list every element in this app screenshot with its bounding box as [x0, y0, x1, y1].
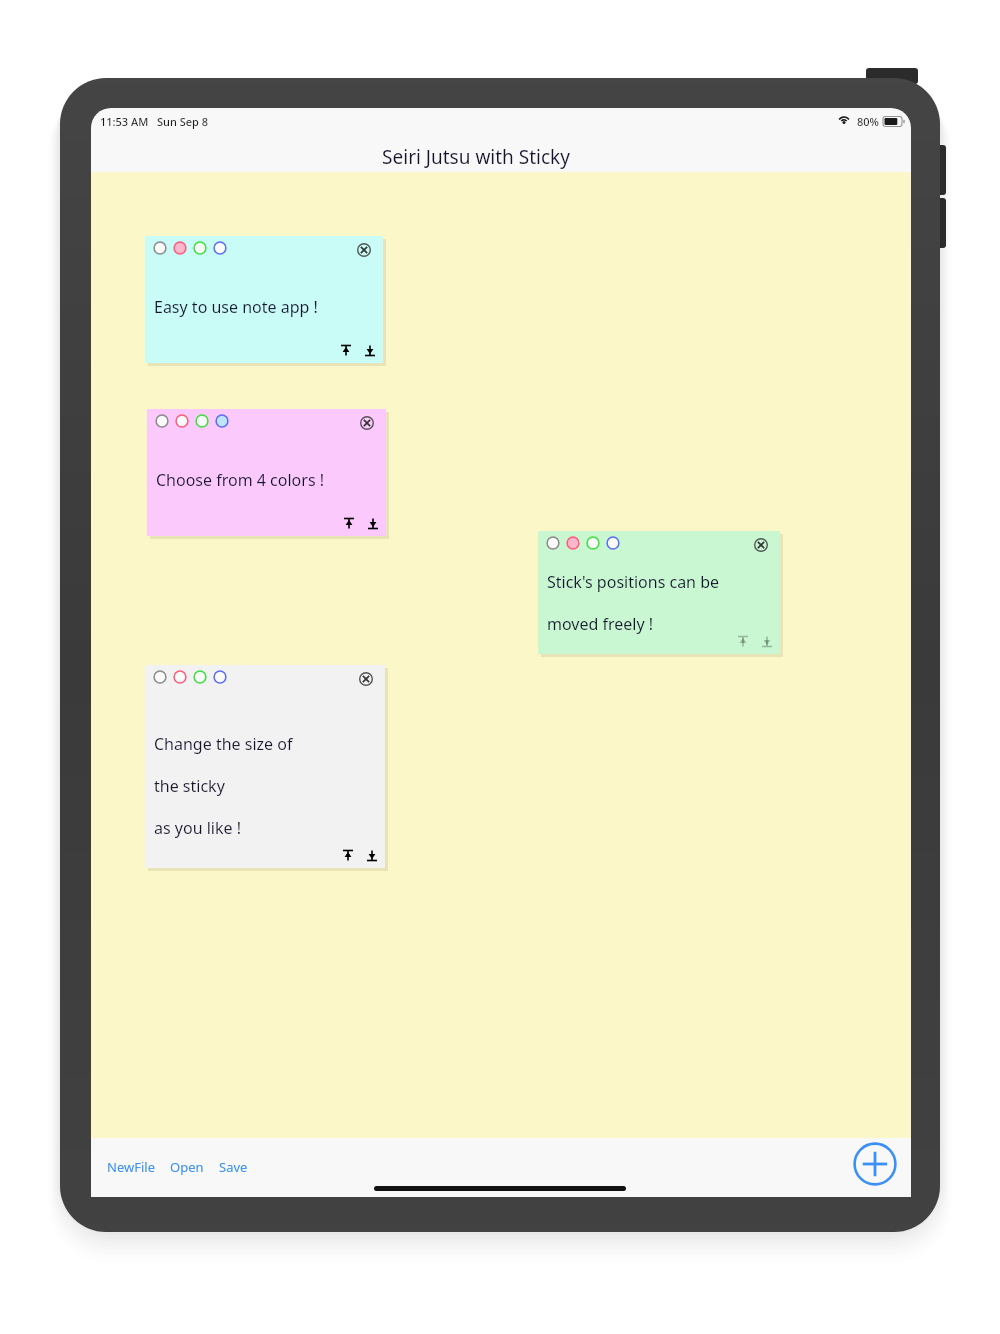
staticText: as you like ! — [154, 817, 241, 839]
button[interactable]: NewFile — [105, 1155, 157, 1179]
button[interactable]: Note colour — [538, 531, 780, 654]
button[interactable]: Add sticky note — [852, 1141, 898, 1187]
button[interactable]: Note colour — [173, 670, 187, 684]
staticText: Seiri Jutsu with Sticky — [382, 144, 570, 170]
staticText: Save — [219, 1158, 248, 1176]
button[interactable]: Close note — [358, 414, 376, 432]
staticText: Open — [170, 1158, 204, 1176]
button[interactable]: Note colour — [175, 414, 189, 428]
button[interactable]: Open — [168, 1155, 206, 1179]
staticText: moved freely ! — [547, 613, 654, 635]
button[interactable]: Seiri Jutsu with Sticky — [374, 143, 577, 170]
button[interactable]: Note colour — [546, 536, 560, 550]
staticText: 11:53 AM — [100, 114, 149, 129]
button[interactable]: Note colour — [153, 241, 167, 255]
button[interactable]: Note colour — [606, 536, 620, 550]
staticText: Stick's positions can be — [547, 571, 720, 593]
button[interactable]: Note colour — [213, 670, 227, 684]
button[interactable]: Note colour — [153, 670, 167, 684]
staticText: Choose from 4 colors ! — [156, 469, 325, 491]
staticText: Change the size of — [154, 733, 293, 755]
button[interactable]: Note colour — [566, 536, 580, 550]
button[interactable]: Grow note — [364, 515, 382, 533]
button[interactable]: Grow note — [361, 342, 379, 360]
button[interactable]: Note colour — [195, 414, 209, 428]
staticText: Sun Sep 8 — [157, 114, 209, 129]
button[interactable]: Note colour — [193, 241, 207, 255]
button[interactable]: Note colour — [145, 236, 383, 363]
staticText: Easy to use note app ! — [154, 296, 318, 318]
button[interactable]: Shrink note — [339, 847, 357, 865]
button[interactable]: Shrink note — [337, 342, 355, 360]
button[interactable]: Note colour — [215, 414, 229, 428]
button[interactable]: Note colour — [173, 241, 187, 255]
button[interactable]: Close note — [355, 241, 373, 259]
button[interactable]: Shrink note — [734, 633, 752, 651]
button[interactable]: Note colour — [213, 241, 227, 255]
button[interactable]: Note colour — [586, 536, 600, 550]
staticText: the sticky — [154, 775, 225, 797]
button[interactable]: Save — [217, 1155, 250, 1179]
button[interactable]: Grow note — [758, 633, 776, 651]
button[interactable]: Note colour — [147, 409, 386, 536]
staticText: 80% — [857, 114, 879, 129]
button[interactable]: Note colour — [155, 414, 169, 428]
button[interactable]: Grow note — [363, 847, 381, 865]
button[interactable]: Close note — [752, 536, 770, 554]
button[interactable]: Note colour — [193, 670, 207, 684]
staticText: NewFile — [107, 1158, 155, 1176]
button[interactable]: Shrink note — [340, 515, 358, 533]
button[interactable]: Close note — [357, 670, 375, 688]
button[interactable]: Note colour — [145, 665, 385, 868]
